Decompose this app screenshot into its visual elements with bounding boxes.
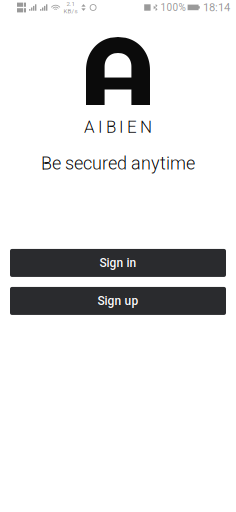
staticText: 2.1 [66,0,74,7]
button[interactable]: Sign in [10,249,226,277]
staticText: Sign in [99,256,136,270]
button[interactable]: Sign up [10,287,226,315]
staticText: Sign up [97,294,138,308]
staticText: 100% [161,2,186,13]
staticText: KB/s [63,7,77,15]
staticText: Be secured anytime [41,153,195,174]
staticText: 18:14 [203,1,230,14]
staticText: AIBIEN [84,117,152,137]
